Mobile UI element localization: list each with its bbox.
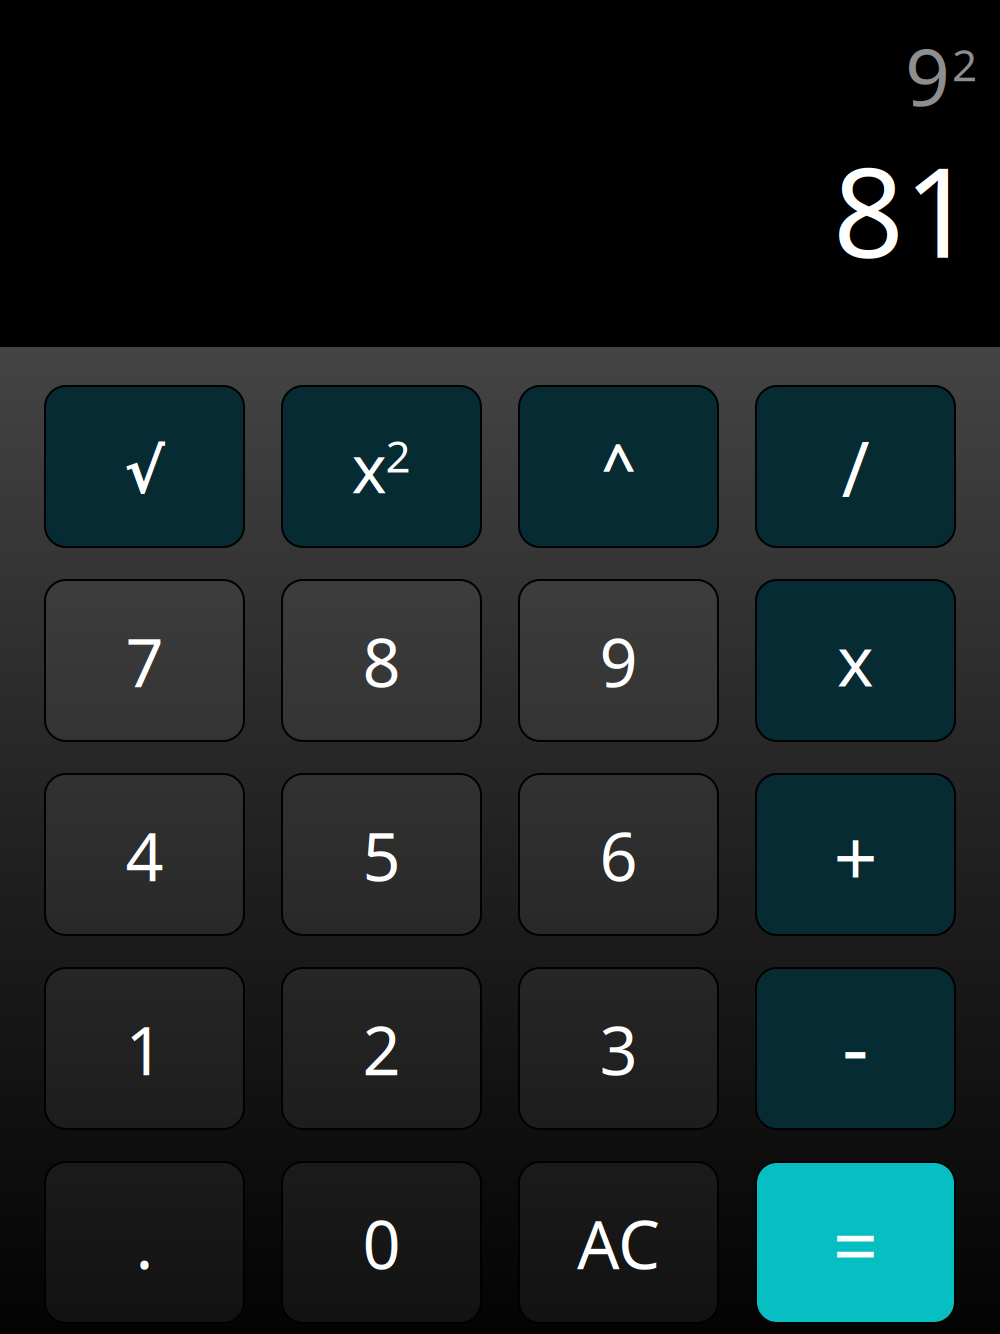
button[interactable]: Multiply [755,581,955,740]
button[interactable]: 1 [44,969,244,1128]
staticText: 3 [599,1005,637,1094]
staticText: 8 [362,617,400,706]
button[interactable]: 6 [518,775,718,934]
staticText: 4 [125,811,163,900]
button[interactable]: Decimal point [44,1163,244,1322]
staticText: 9 [599,617,637,706]
button[interactable]: All clear [518,1163,718,1322]
button[interactable]: Divide [755,387,955,546]
staticText: 0 [362,1199,400,1288]
button[interactable]: 5 [281,775,481,934]
button[interactable]: 3 [518,969,718,1128]
staticText: - [842,991,869,1100]
staticText: √ [124,437,165,506]
button[interactable]: Power [518,387,718,546]
staticText: x [837,613,874,706]
button[interactable]: Minus [755,969,955,1128]
staticText: 5 [362,811,400,900]
staticText: 1 [125,1005,163,1094]
button[interactable]: 8 [281,581,481,740]
staticText: . [135,1199,153,1288]
staticText: AC [577,1199,660,1288]
staticText: / [841,417,869,518]
button[interactable]: 7 [44,581,244,740]
staticText: = [832,1190,878,1297]
button[interactable]: Square [281,387,481,546]
staticText: 2 [362,1005,400,1094]
staticText: 6 [599,811,637,900]
staticText: 2 [385,426,410,485]
staticText: 9 [905,23,950,127]
button[interactable]: Square root [44,387,244,546]
staticText: 7 [125,617,163,706]
staticText: 81 [833,127,975,292]
button[interactable]: Plus [755,775,955,934]
button[interactable]: Equals [755,1163,955,1322]
button[interactable]: 9 [518,581,718,740]
staticText: ^ [601,424,635,503]
staticText: + [833,805,877,908]
staticText: x [351,423,386,512]
button[interactable]: 0 [281,1163,481,1322]
staticText: 2 [952,35,977,93]
button[interactable]: 4 [44,775,244,934]
button[interactable]: 2 [281,969,481,1128]
